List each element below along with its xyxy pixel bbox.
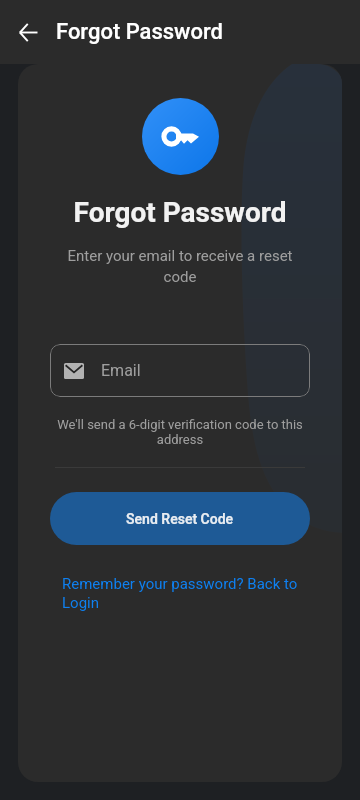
staticText: Send Reset Code	[126, 511, 234, 527]
button[interactable]: Email	[50, 344, 310, 397]
button[interactable]: Back	[0, 4, 56, 60]
staticText: Enter your email to receive a reset code	[60, 247, 300, 285]
button[interactable]: Send Reset Code	[50, 492, 310, 545]
staticText: Remember your password? Back to Login	[62, 575, 302, 612]
button[interactable]: Remember your password? Back to Login	[62, 575, 302, 612]
staticText: We'll send a 6-digit verification code t…	[55, 417, 305, 447]
staticText: Forgot Password	[18, 196, 342, 229]
staticText: Forgot Password	[56, 19, 223, 45]
staticText: Email	[101, 361, 141, 380]
